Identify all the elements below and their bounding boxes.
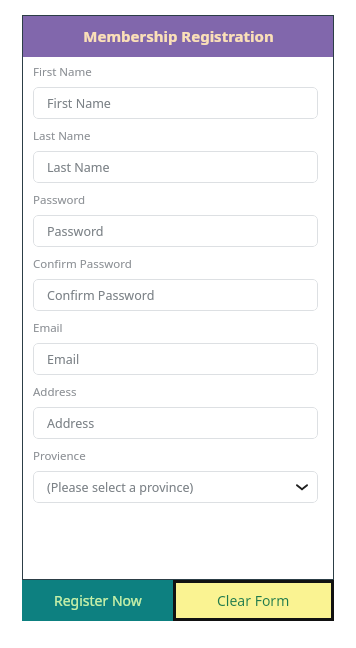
button[interactable]: (Please select a province) (33, 471, 318, 503)
staticText: Confirm Password (47, 287, 308, 304)
staticText: Clear Form (217, 591, 290, 610)
staticText: Password (33, 192, 86, 208)
staticText: Confirm Password (33, 256, 132, 272)
staticText: Last Name (47, 159, 308, 176)
staticText: Last Name (33, 128, 91, 144)
staticText: Register Now (54, 591, 142, 610)
button[interactable]: Password (33, 215, 318, 247)
staticText: First Name (47, 95, 308, 112)
staticText: Provience (33, 448, 86, 464)
staticText: Password (47, 223, 308, 240)
staticText: (Please select a province) (47, 479, 296, 496)
staticText: Address (33, 384, 77, 400)
staticText: Address (47, 415, 308, 432)
button[interactable]: Address (33, 407, 318, 439)
button[interactable]: Email (33, 343, 318, 375)
staticText: Email (47, 351, 308, 368)
staticText: First Name (33, 64, 92, 80)
button[interactable]: First Name (33, 87, 318, 119)
staticText: Email (33, 320, 63, 336)
button[interactable]: Last Name (33, 151, 318, 183)
button[interactable]: Register Now (22, 580, 173, 621)
button[interactable]: Confirm Password (33, 279, 318, 311)
staticText: Membership Registration (83, 26, 274, 46)
button[interactable]: Clear Form (173, 580, 334, 621)
